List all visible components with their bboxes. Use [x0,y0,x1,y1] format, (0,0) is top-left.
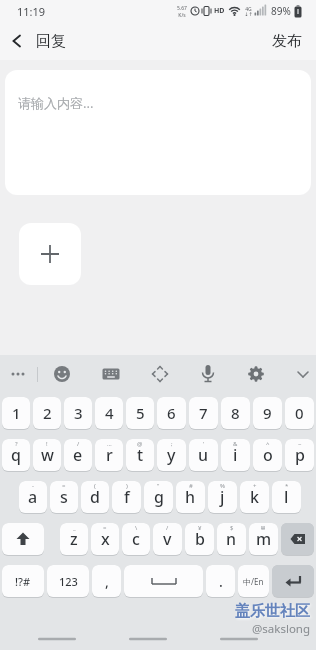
button[interactable]: 7 [189,397,218,429]
button[interactable]: 4 [95,397,123,429]
button[interactable]: 0 [285,397,314,429]
staticText: v [163,528,172,550]
button[interactable]: r [95,439,123,471]
staticText: z [70,528,78,550]
button[interactable]: 请输入内容... [5,70,311,195]
staticText: ^ [266,440,270,448]
staticText: _ [73,524,76,532]
button[interactable]: f [112,481,141,513]
button[interactable] [124,565,203,597]
button[interactable]: a [19,481,47,513]
button[interactable]: q [2,439,30,471]
staticText: \ [135,524,138,532]
staticText: i [233,444,238,466]
button[interactable]: 发布 [258,22,316,60]
button[interactable] [0,24,34,58]
staticText: u [198,444,209,466]
button[interactable]: 2 [33,397,61,429]
button[interactable]: 1 [2,397,30,429]
button[interactable]: d [81,481,109,513]
button[interactable]: . [206,565,235,597]
staticText: 盖乐世社区 [235,602,310,621]
staticText: @sakslong [252,621,311,637]
button[interactable]: l [272,481,301,513]
staticText: " [157,482,160,490]
staticText: d [90,486,100,508]
button[interactable] [2,523,44,555]
button[interactable] [196,362,220,386]
button[interactable]: !?# [2,565,44,597]
button[interactable]: x [91,523,119,555]
button[interactable] [272,565,314,597]
button[interactable]: v [153,523,182,555]
button[interactable]: z [60,523,88,555]
staticText: 123 [59,574,78,589]
staticText: - [32,482,34,490]
button[interactable]: n [217,523,246,555]
button[interactable]: i [221,439,250,471]
staticText: 1 [12,403,21,423]
button[interactable]: k [240,481,269,513]
staticText: ( [94,482,96,490]
button[interactable]: 3 [64,397,92,429]
staticText: p [295,444,305,466]
button[interactable]: y [157,439,186,471]
staticText: ¥ [198,524,202,532]
button[interactable]: m [249,523,278,555]
staticText: … [107,440,112,448]
button[interactable] [99,362,123,386]
button[interactable] [281,523,314,555]
button[interactable]: p [285,439,314,471]
button[interactable]: t [126,439,154,471]
button[interactable]: h [176,481,205,513]
staticText: y [167,444,176,466]
staticText: s [60,486,68,508]
button[interactable]: b [185,523,214,555]
button[interactable] [291,362,315,386]
staticText: !?# [15,574,31,589]
button[interactable] [148,362,172,386]
button[interactable] [50,362,74,386]
button[interactable]: 6 [157,397,186,429]
button[interactable]: 5 [126,397,154,429]
staticText: t [137,444,144,466]
button[interactable]: j [208,481,237,513]
button[interactable]: o [253,439,282,471]
staticText: 5.67 K/s [177,5,187,18]
staticText: o [263,444,273,466]
staticText: r [106,444,113,466]
button[interactable]: 9 [253,397,282,429]
staticText: e [73,444,83,466]
staticText: l [284,486,289,508]
button[interactable]: c [122,523,150,555]
staticText: 9 [263,403,272,423]
button[interactable] [244,362,268,386]
staticText: HD [214,6,225,16]
staticText: ~ [298,440,302,448]
staticText: 0 [295,403,304,423]
staticText: g [154,486,164,508]
button[interactable] [6,362,30,386]
staticText: # [189,482,193,490]
button[interactable]: s [50,481,78,513]
staticText: . [219,572,223,591]
staticText: / [166,524,169,532]
staticText: f [124,486,130,508]
staticText: 回复 [36,32,66,51]
staticText: n [226,528,237,550]
button[interactable]: e [64,439,92,471]
button[interactable]: 8 [221,397,250,429]
staticText: 6 [167,403,176,423]
staticText: = [103,524,107,532]
button[interactable]: u [189,439,218,471]
staticText: 7 [199,403,208,423]
button[interactable]: w [33,439,61,471]
button[interactable]: 123 [47,565,89,597]
button[interactable] [19,223,81,285]
button[interactable]: g [144,481,173,513]
staticText: 中/En [243,576,264,587]
staticText: 2 [43,403,52,423]
button[interactable]: 中/En [238,565,269,597]
button[interactable]: , [92,565,121,597]
staticText: h [185,486,196,508]
